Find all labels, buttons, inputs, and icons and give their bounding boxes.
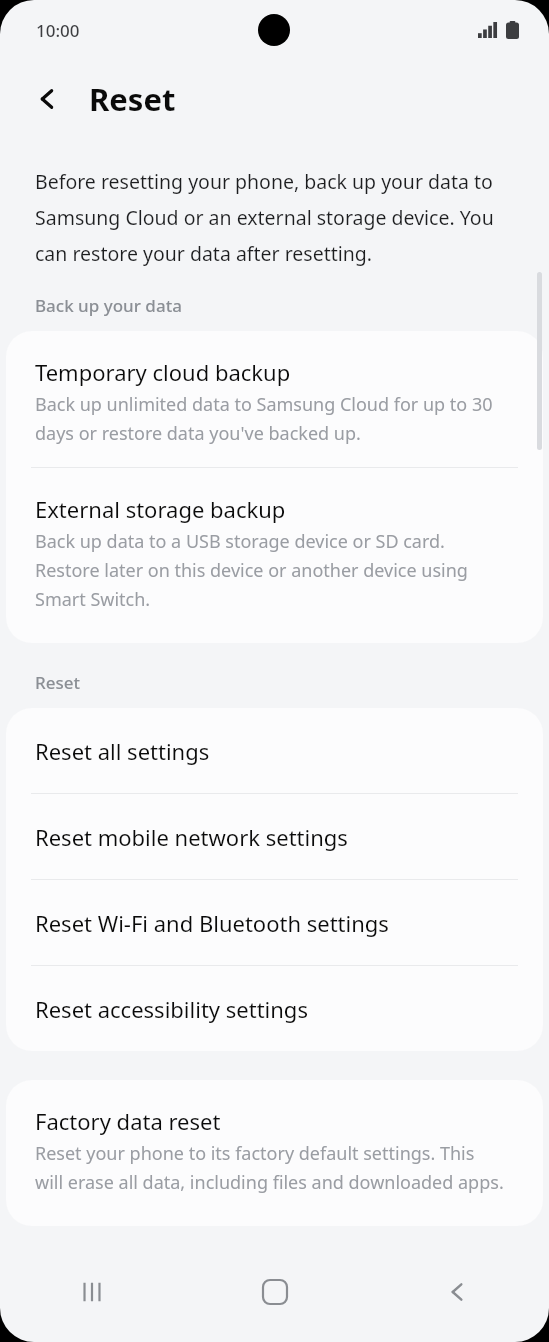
button[interactable]: Recent apps xyxy=(56,1256,128,1328)
staticText: Factory data reset xyxy=(35,1106,221,1136)
staticText: Reset Wi-Fi and Bluetooth settings xyxy=(35,908,389,938)
button[interactable]: Reset mobile network settings xyxy=(6,794,543,879)
staticText: Reset all settings xyxy=(35,736,210,766)
staticText: Reset xyxy=(89,78,176,120)
staticText: Back up unlimited data to Samsung Cloud … xyxy=(35,392,507,445)
staticText: 10:00 xyxy=(36,19,80,42)
button[interactable]: Back xyxy=(22,73,74,125)
button[interactable]: Temporary cloud backup xyxy=(6,331,543,467)
button[interactable]: Reset Wi-Fi and Bluetooth settings xyxy=(6,880,543,965)
staticText: Back up your data xyxy=(35,294,182,317)
staticText: Reset mobile network settings xyxy=(35,822,348,852)
staticText: Reset accessibility settings xyxy=(35,994,308,1024)
button[interactable]: Home xyxy=(239,1256,311,1328)
staticText: Reset your phone to its factory default … xyxy=(35,1141,507,1194)
button[interactable]: Back xyxy=(422,1256,494,1328)
button[interactable]: Factory data reset xyxy=(6,1080,543,1226)
staticText: External storage backup xyxy=(35,494,286,524)
button[interactable]: Reset accessibility settings xyxy=(6,966,543,1051)
staticText: Temporary cloud backup xyxy=(35,357,291,387)
staticText: Before resetting your phone, back up you… xyxy=(35,168,509,267)
staticText: Reset xyxy=(35,671,81,694)
button[interactable]: External storage backup xyxy=(6,468,543,643)
staticText: Back up data to a USB storage device or … xyxy=(35,529,507,611)
button[interactable]: Reset all settings xyxy=(6,708,543,793)
